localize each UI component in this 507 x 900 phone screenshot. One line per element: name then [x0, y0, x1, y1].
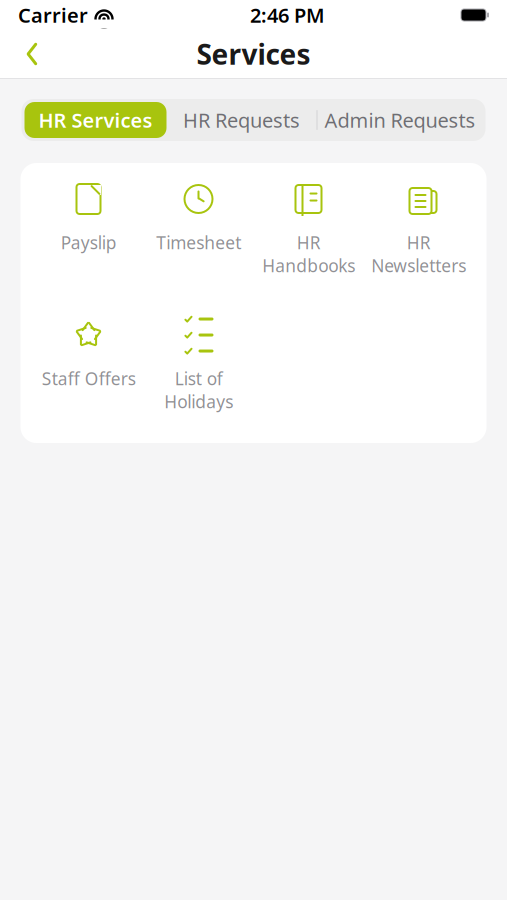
staticText: 2:46 PM [250, 2, 325, 28]
button[interactable]: Back [12, 34, 52, 74]
staticText: Payslip [60, 231, 116, 254]
button[interactable]: Staff Offers [33, 317, 143, 425]
staticText: Admin Requests [324, 107, 475, 133]
staticText: HR Requests [183, 107, 300, 133]
button[interactable]: Timesheet [143, 181, 253, 289]
button[interactable]: HR Requests [166, 102, 316, 138]
button[interactable]: List of Holidays [143, 317, 253, 425]
button[interactable]: Admin Requests [317, 102, 482, 138]
button[interactable]: HR Handbooks [253, 181, 363, 289]
staticText: Services [196, 35, 310, 73]
button[interactable]: HR Services [24, 102, 166, 138]
staticText: HR Handbooks [262, 231, 355, 277]
button[interactable]: HR Newsletters [363, 181, 473, 289]
staticText: List of Holidays [164, 367, 233, 413]
staticText: HR Services [38, 107, 152, 133]
staticText: Staff Offers [41, 367, 135, 390]
button[interactable]: Payslip [33, 181, 143, 289]
staticText: Timesheet [156, 231, 241, 254]
staticText: Carrier [18, 2, 88, 28]
staticText: HR Newsletters [371, 231, 466, 277]
